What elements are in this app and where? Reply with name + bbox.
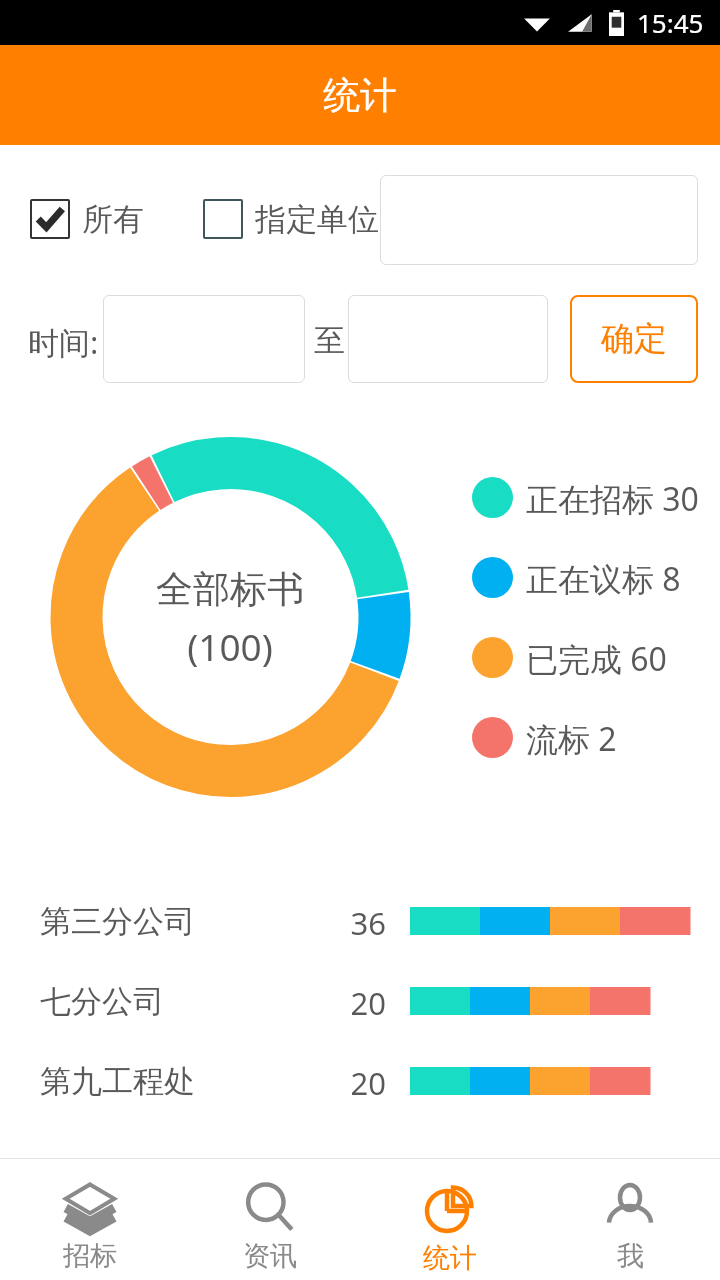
staticText: 时间: — [28, 321, 99, 363]
staticText: 已完成 60 — [526, 637, 667, 678]
button[interactable]: 统计 — [360, 1158, 540, 1280]
other: 统计 — [425, 1183, 475, 1233]
staticText: 20 — [330, 982, 386, 1024]
staticText: 正在招标 30 — [526, 477, 699, 518]
button[interactable]: 已完成 60 — [472, 637, 667, 678]
button[interactable]: 所有 — [30, 199, 144, 239]
button[interactable]: 单位输入框 — [380, 175, 698, 265]
staticText: (100) — [40, 621, 420, 671]
staticText: 我 — [617, 1239, 644, 1273]
staticText: 36 — [330, 902, 386, 944]
button[interactable]: 七分公司 — [0, 978, 720, 1022]
button[interactable]: 开始时间 — [103, 295, 305, 383]
staticText: 指定单位 — [255, 200, 379, 239]
button[interactable]: 正在招标 30 — [472, 477, 699, 518]
staticText: 至 — [314, 321, 345, 360]
other: 招标 — [63, 1183, 117, 1231]
staticText: 第九工程处 — [40, 1062, 195, 1101]
button[interactable]: 指定单位 — [203, 199, 379, 239]
staticText: 确定 — [601, 318, 667, 360]
staticText: 正在议标 8 — [526, 557, 681, 598]
staticText: 统计 — [423, 1241, 477, 1275]
button[interactable]: 结束时间 — [348, 295, 548, 383]
other: 我 — [605, 1183, 655, 1231]
button[interactable]: 确定 — [570, 295, 698, 383]
button[interactable]: 第三分公司 — [0, 898, 720, 942]
staticText: 所有 — [82, 200, 144, 239]
staticText: 流标 2 — [526, 717, 617, 758]
staticText: 全部标书 — [40, 566, 420, 613]
staticText: 15:45 — [637, 5, 704, 40]
staticText: 招标 — [63, 1239, 117, 1273]
button[interactable]: 第九工程处 — [0, 1058, 720, 1102]
staticText: 20 — [330, 1062, 386, 1104]
staticText: 第三分公司 — [40, 902, 195, 941]
button[interactable]: 流标 2 — [472, 717, 617, 758]
other: 资讯 — [244, 1183, 296, 1231]
staticText: 统计 — [323, 72, 397, 119]
staticText: 资讯 — [243, 1239, 297, 1273]
button[interactable]: 正在议标 8 — [472, 557, 681, 598]
button[interactable]: 资讯 — [180, 1158, 360, 1280]
staticText: 七分公司 — [40, 982, 164, 1021]
button[interactable]: 招标 — [0, 1158, 180, 1280]
button[interactable]: 我 — [540, 1158, 720, 1280]
